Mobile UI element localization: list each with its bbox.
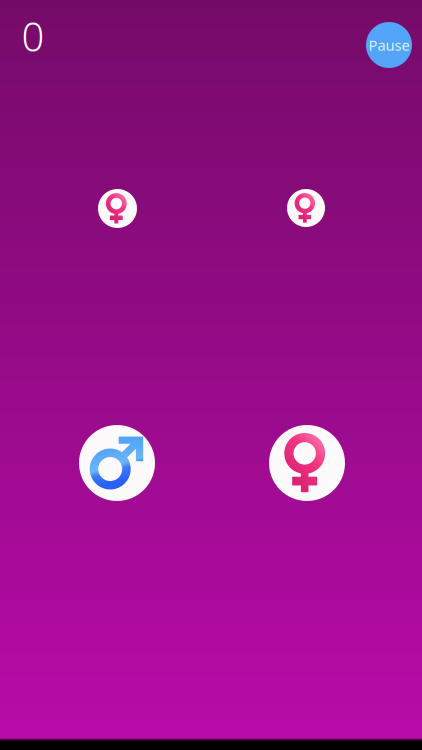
staticText: 0 [21, 9, 44, 62]
button[interactable]: Pause [366, 22, 412, 68]
staticText: Pause [368, 35, 409, 55]
